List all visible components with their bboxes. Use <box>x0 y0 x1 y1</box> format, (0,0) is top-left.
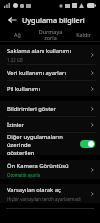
staticText: Uygulama bilgileri <box>22 15 85 25</box>
other: Aç <box>89 191 95 197</box>
button[interactable]: Kaldır <box>67 28 100 41</box>
button[interactable]: Varsayılan olarak aç <box>0 184 100 203</box>
button[interactable]: Ağ <box>0 28 34 41</box>
other: Aç <box>89 167 95 173</box>
staticText: Bildirimleri göster <box>7 105 56 113</box>
staticText: Saklama alanı kullanımı <box>7 47 71 55</box>
staticText: Otomatik ayarla <box>7 172 41 178</box>
button[interactable]: Diğer uygulamaların üzerinde gösterilen <box>0 133 100 155</box>
button[interactable]: Pil kullanımı <box>0 81 100 96</box>
button[interactable]: Aç/Kapat <box>80 140 95 148</box>
staticText: Durmaya zorla <box>34 28 67 41</box>
staticText: Ön Kamera Görüntüsü <box>7 162 69 170</box>
button[interactable]: Saklama alanı kullanımı <box>0 45 100 64</box>
button[interactable]: Veri kullanımı ayarları <box>0 65 100 80</box>
staticText: Ağ <box>14 31 21 38</box>
staticText: Hiçbir varsayılan tercih ayarlanmadı <box>7 196 81 202</box>
other: Aç <box>89 122 95 128</box>
button[interactable]: Bildirimleri göster <box>0 101 100 116</box>
button[interactable]: İzinler <box>0 117 100 132</box>
button[interactable]: Geri <box>5 13 18 26</box>
staticText: 1.22 GB <box>7 57 23 63</box>
button[interactable]: Ön Kamera Görüntüsü <box>0 160 100 179</box>
staticText: Pil kullanımı <box>7 85 40 93</box>
other: Aç <box>89 70 95 76</box>
staticText: İzinler <box>7 121 24 129</box>
staticText: Varsayılan olarak aç <box>7 186 61 194</box>
staticText: Kaldır <box>76 31 91 38</box>
other: Aç <box>89 86 95 92</box>
other: Aç <box>89 106 95 112</box>
other: Aç <box>89 52 95 58</box>
button[interactable]: Durmaya zorla <box>34 28 67 41</box>
staticText: Diğer uygulamaların üzerinde gösterilen <box>7 133 76 155</box>
staticText: Veri kullanımı ayarları <box>7 69 66 77</box>
